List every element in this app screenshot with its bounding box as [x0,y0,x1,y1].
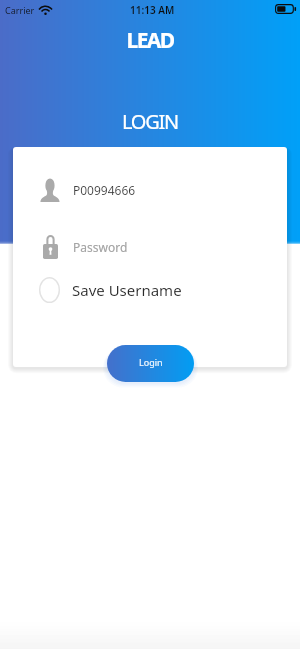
staticText: LOGIN [0,108,300,135]
button[interactable]: Login [107,345,194,382]
staticText: Carrier [5,4,35,16]
staticText: Password [73,239,128,255]
button[interactable]: Save Username [13,274,287,306]
staticText: P00994666 [73,182,136,198]
staticText: LEAD [0,26,300,55]
staticText: 11:13 AM [130,3,175,17]
staticText: Login [139,356,163,368]
staticText: Save Username [72,280,182,300]
button[interactable]: P00994666 [13,173,287,207]
button[interactable]: Password [13,230,287,264]
